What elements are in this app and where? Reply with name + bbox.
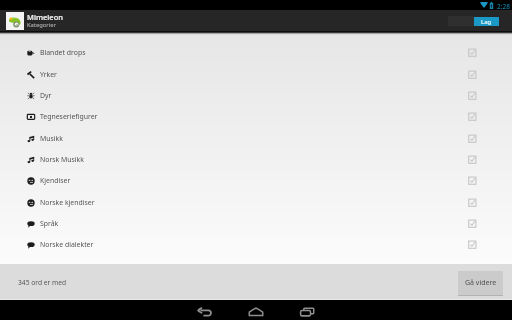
staticText: Blandet drops bbox=[40, 48, 86, 57]
button[interactable]: Recent apps bbox=[297, 303, 317, 320]
staticText: Mimeleon bbox=[27, 12, 63, 22]
button[interactable]: Kjendiser bbox=[0, 170, 512, 191]
button[interactable]: Dyr bbox=[0, 85, 512, 106]
staticText: Dyr bbox=[40, 91, 52, 100]
button[interactable]: Norske kjendiser bbox=[0, 192, 512, 213]
button[interactable]: Norsk Musikk bbox=[0, 149, 512, 170]
button[interactable]: Home bbox=[246, 303, 266, 320]
staticText: Musikk bbox=[40, 134, 63, 143]
button[interactable]: Blandet drops bbox=[0, 42, 512, 63]
staticText: Norsk Musikk bbox=[40, 155, 84, 164]
staticText: 2:28 bbox=[497, 2, 510, 11]
staticText: Gå videre bbox=[465, 278, 497, 288]
button[interactable]: Språk bbox=[0, 213, 512, 234]
staticText: Tegneseriefigurer bbox=[40, 112, 98, 121]
button[interactable]: Gå videre bbox=[458, 271, 503, 295]
staticText: Lag bbox=[481, 18, 492, 26]
button[interactable]: Back bbox=[195, 303, 215, 320]
staticText: Kategorier bbox=[27, 21, 56, 29]
button[interactable]: Tegneseriefigurer bbox=[0, 106, 512, 127]
button[interactable]: Norske dialekter bbox=[0, 234, 512, 255]
staticText: Norske kjendiser bbox=[40, 198, 95, 207]
staticText: Kjendiser bbox=[40, 176, 71, 185]
staticText: Yrker bbox=[40, 70, 57, 79]
staticText: Språk bbox=[40, 219, 59, 228]
button[interactable]: Musikk bbox=[0, 128, 512, 149]
button[interactable]: Yrker bbox=[0, 64, 512, 85]
staticText: Norske dialekter bbox=[40, 240, 94, 249]
button[interactable]: Lag bbox=[474, 17, 499, 26]
staticText: 345 ord er med bbox=[18, 278, 67, 287]
